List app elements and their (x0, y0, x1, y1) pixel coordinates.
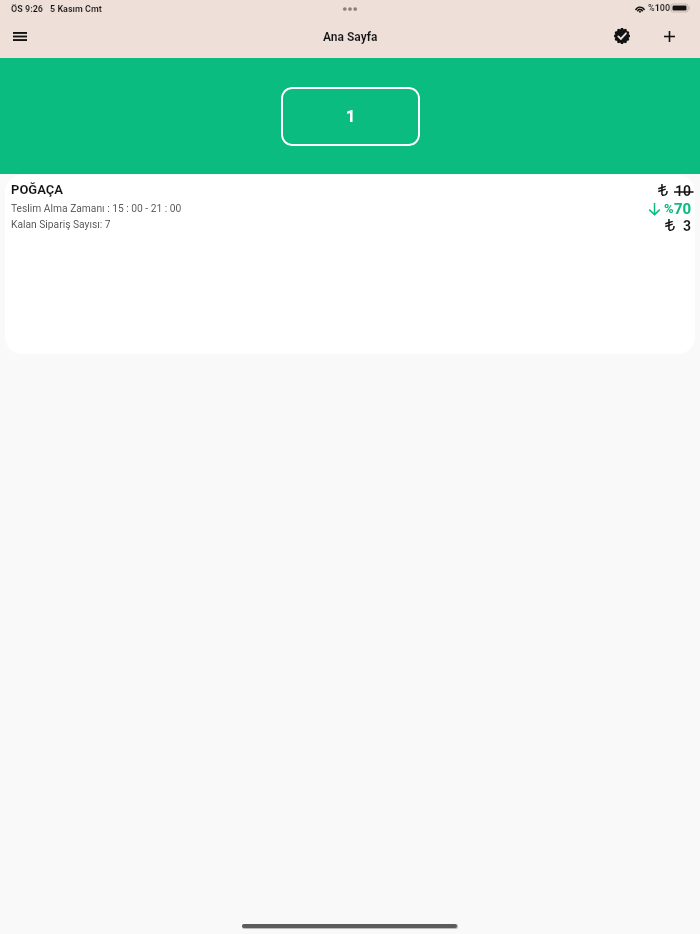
staticText: 70 (674, 200, 692, 218)
button[interactable]: Menu (6, 23, 33, 50)
staticText: 3 (683, 218, 692, 234)
staticText: POĞAÇA (11, 182, 64, 197)
button[interactable]: 1 (281, 87, 420, 146)
staticText: 1 (346, 107, 356, 126)
staticText: Kalan Sipariş Sayısı: 7 (11, 218, 111, 230)
button[interactable]: POĞAÇA (5, 175, 695, 354)
staticText: 5 Kasım Cmt (50, 4, 102, 15)
button[interactable]: Add (656, 23, 683, 50)
staticText: ÖS 9:26 (11, 4, 44, 15)
staticText: Teslim Alma Zamanı : 15 : 00 - 21 : 00 (11, 202, 182, 214)
button[interactable]: Verified (608, 22, 635, 49)
staticText: 10 (675, 183, 692, 199)
staticText: Ana Sayfa (323, 30, 378, 44)
staticText: % (664, 201, 674, 216)
staticText: %100 (648, 3, 671, 14)
